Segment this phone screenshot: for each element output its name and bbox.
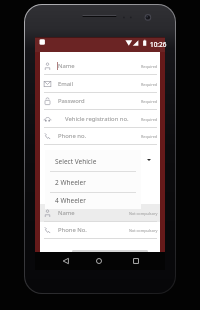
button[interactable]: Vehicle registration no. bbox=[40, 110, 160, 128]
button[interactable]: Email bbox=[40, 75, 160, 93]
staticText: Select Vehicle bbox=[55, 157, 97, 166]
button[interactable]: Home bbox=[92, 252, 106, 270]
staticText: Password bbox=[58, 97, 85, 105]
button[interactable]: Back bbox=[59, 252, 73, 270]
button[interactable]: 4 Wheeler bbox=[45, 192, 141, 209]
button[interactable]: Phone No. bbox=[40, 221, 160, 239]
staticText: 4 Wheeler bbox=[55, 196, 86, 205]
staticText: Email bbox=[58, 80, 74, 88]
button[interactable]: Select Vehicle bbox=[45, 150, 141, 172]
staticText: 10:26 bbox=[150, 40, 167, 49]
staticText: Required bbox=[141, 134, 158, 139]
button[interactable]: Recents bbox=[129, 252, 143, 270]
staticText: 2 Wheeler bbox=[55, 178, 86, 187]
staticText: Phone No. bbox=[58, 226, 87, 234]
staticText: Not compulsory bbox=[129, 228, 158, 233]
button[interactable]: Name bbox=[40, 204, 160, 222]
staticText: Required bbox=[141, 117, 158, 122]
staticText: Required bbox=[141, 64, 158, 69]
staticText: Not compulsory bbox=[129, 211, 158, 216]
staticText: Required bbox=[141, 99, 158, 104]
button[interactable]: Name bbox=[40, 57, 160, 75]
button[interactable]: Password bbox=[40, 92, 160, 110]
staticText: Required bbox=[141, 82, 158, 87]
staticText: Phone no. bbox=[58, 132, 87, 140]
button[interactable]: 2 Wheeler bbox=[45, 172, 141, 193]
staticText: Name bbox=[58, 209, 75, 217]
button[interactable] bbox=[72, 250, 148, 253]
staticText: Name bbox=[58, 62, 75, 70]
button[interactable]: Phone no. bbox=[40, 127, 160, 145]
staticText: Vehicle registration no. bbox=[65, 115, 129, 123]
